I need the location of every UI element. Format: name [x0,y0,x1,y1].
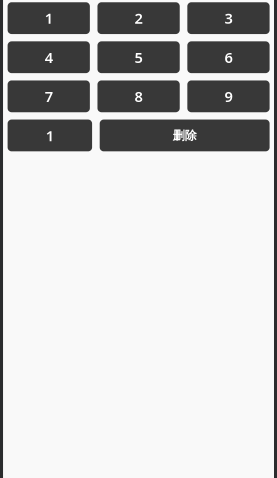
staticText: 4 [45,47,53,67]
button[interactable]: 2 [97,2,180,34]
button[interactable]: 1 [8,120,92,151]
staticText: 3 [224,8,232,28]
staticText: 7 [45,87,53,106]
button[interactable]: 3 [187,2,270,34]
staticText: 1 [46,126,54,145]
button[interactable]: 4 [8,41,90,73]
staticText: 删除 [173,128,197,143]
button[interactable]: 删除 [100,120,270,151]
button[interactable]: 9 [187,80,270,112]
button[interactable]: 1 [8,2,90,34]
button[interactable]: 5 [97,41,180,73]
staticText: 8 [135,87,143,106]
button[interactable]: 6 [187,41,270,73]
staticText: 5 [135,47,143,67]
button[interactable]: 7 [8,80,90,112]
staticText: 2 [135,8,143,28]
staticText: 1 [45,8,53,28]
button[interactable]: 8 [97,80,180,112]
staticText: 6 [224,47,232,67]
staticText: 9 [224,87,232,106]
